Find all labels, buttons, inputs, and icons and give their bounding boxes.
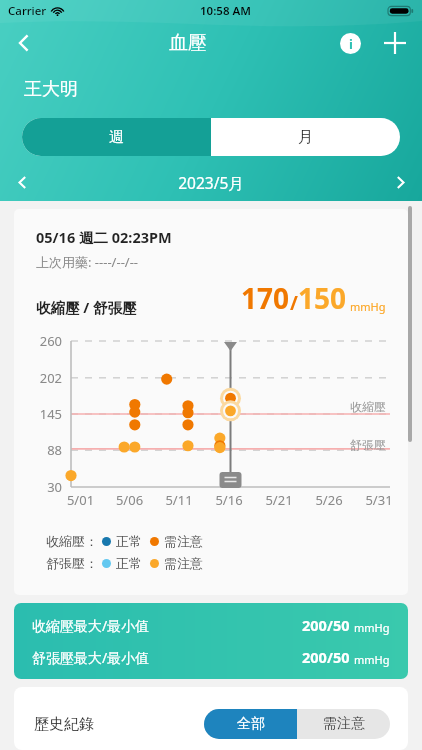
button[interactable]: 需注意: [297, 709, 390, 739]
staticText: 收縮壓: [350, 399, 386, 414]
staticText: 5/16: [204, 491, 254, 509]
staticText: mmHg: [354, 652, 390, 667]
staticText: 歷史紀錄: [34, 715, 94, 734]
staticText: 260: [14, 332, 62, 350]
staticText: mmHg: [350, 299, 386, 314]
staticText: 2023/5月: [44, 172, 378, 193]
staticText: 舒張壓最大/最小值: [32, 648, 150, 667]
staticText: 170: [241, 279, 290, 317]
staticText: 正常: [116, 533, 142, 549]
staticText: i: [349, 35, 353, 53]
staticText: 88: [14, 441, 62, 459]
staticText: 收縮壓 / 舒張壓: [36, 297, 137, 317]
staticText: 需注意: [164, 555, 203, 571]
staticText: 需注意: [164, 533, 203, 549]
staticText: 上次用藥: ----/--/--: [36, 253, 139, 271]
button[interactable]: 收縮壓最大/最小值: [14, 603, 408, 679]
staticText: 30: [14, 478, 62, 496]
staticText: 舒張壓: [350, 437, 386, 452]
staticText: 王大明: [24, 78, 78, 101]
staticText: 150: [298, 279, 347, 317]
button[interactable]: 週: [22, 118, 211, 156]
staticText: 全部: [237, 715, 265, 733]
staticText: 月: [298, 128, 313, 147]
button[interactable]: 月: [211, 118, 400, 156]
staticText: /: [290, 290, 298, 316]
staticText: 200/50: [302, 647, 350, 667]
button[interactable]: Add record: [372, 22, 418, 64]
button[interactable]: Information: [328, 22, 372, 64]
button[interactable]: 全部: [204, 709, 297, 739]
staticText: Carrier: [8, 3, 47, 19]
staticText: 145: [14, 405, 62, 423]
staticText: 202: [14, 369, 62, 387]
staticText: 5/11: [154, 491, 204, 509]
staticText: 200/50: [302, 615, 350, 635]
staticText: mmHg: [354, 620, 390, 635]
staticText: 5/01: [56, 491, 105, 509]
staticText: 5/26: [304, 491, 354, 509]
staticText: 10:58 AM: [200, 3, 251, 19]
staticText: 5/21: [254, 491, 304, 509]
staticText: 5/31: [354, 491, 404, 509]
staticText: 血壓: [169, 31, 207, 55]
staticText: 05/16 週二 02:23PM: [36, 227, 172, 247]
staticText: 週: [109, 128, 124, 147]
staticText: 收縮壓：: [46, 533, 98, 549]
staticText: 正常: [116, 555, 142, 571]
staticText: 舒張壓：: [46, 555, 98, 571]
button[interactable]: Next month: [378, 163, 422, 201]
staticText: 需注意: [323, 715, 365, 733]
button[interactable]: Back: [0, 22, 48, 64]
button[interactable]: Previous month: [0, 163, 44, 201]
staticText: 5/06: [105, 491, 154, 509]
staticText: 收縮壓最大/最小值: [32, 616, 150, 635]
